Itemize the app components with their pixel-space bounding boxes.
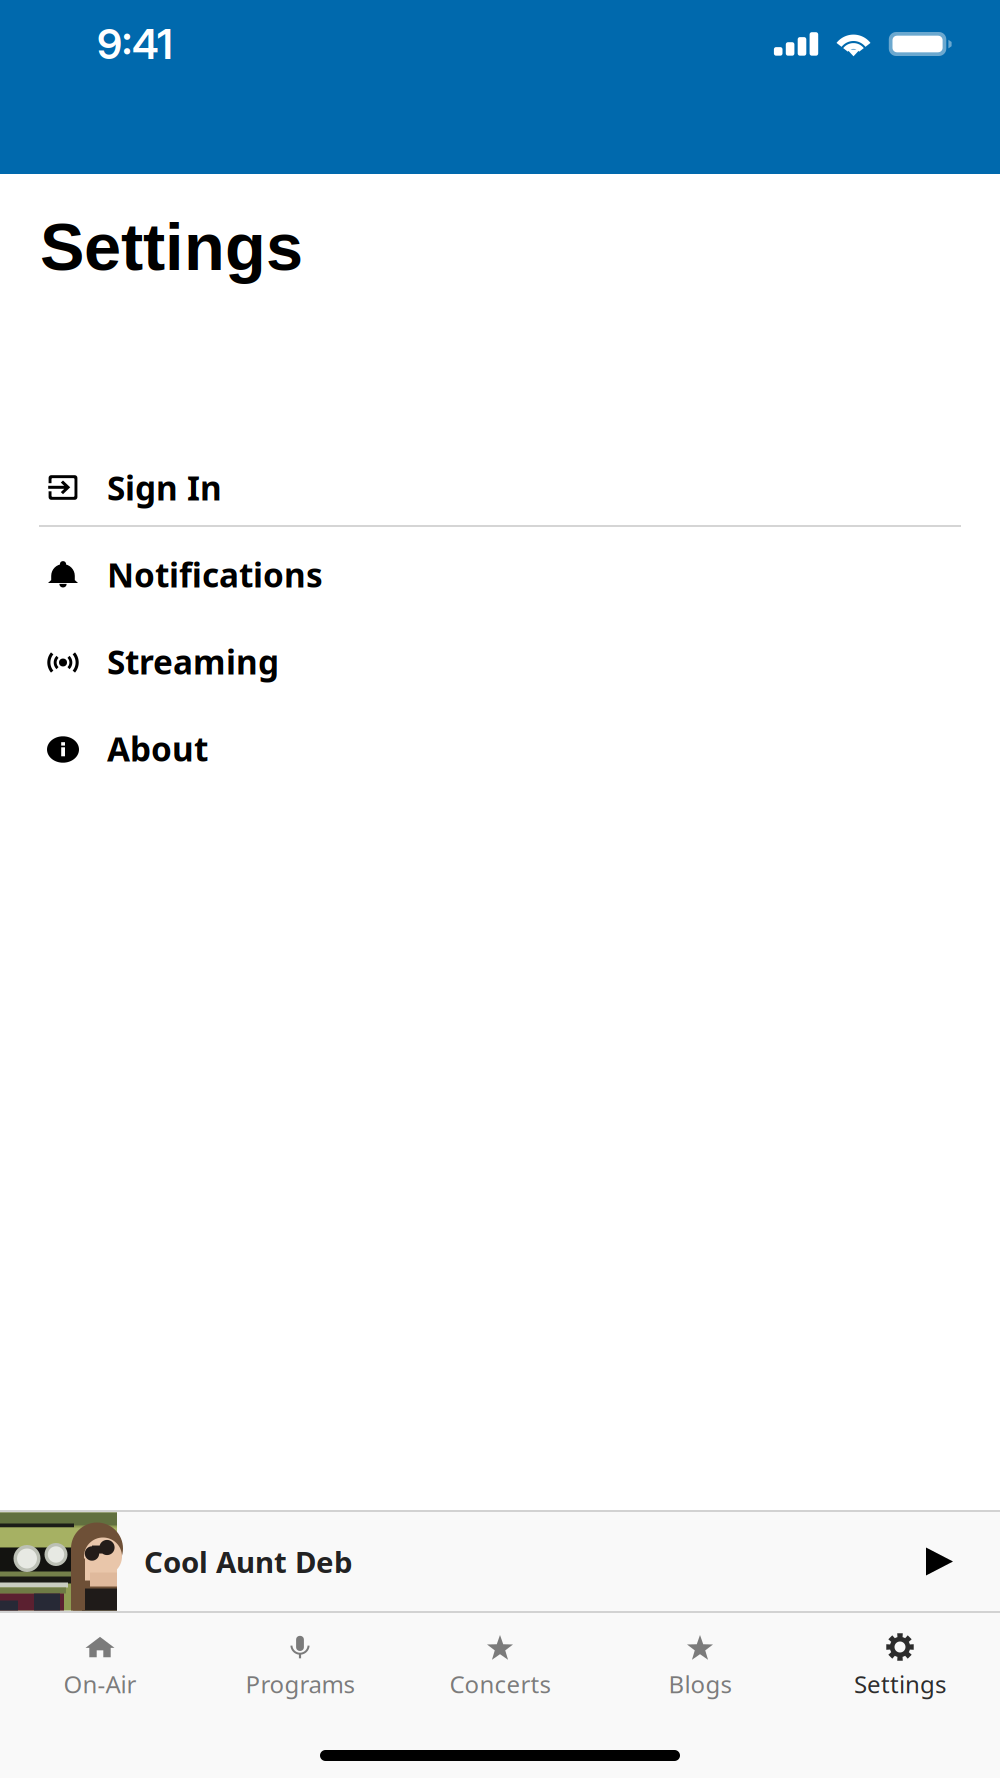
staticText: Notifications: [107, 552, 323, 597]
button[interactable]: Blogs: [600, 1613, 800, 1723]
staticText: About: [107, 726, 208, 771]
staticText: Settings: [40, 210, 303, 284]
button[interactable]: Programs: [200, 1613, 400, 1723]
button[interactable]: On-Air: [0, 1613, 200, 1723]
staticText: Sign In: [107, 465, 222, 510]
button[interactable]: About: [0, 702, 1000, 789]
staticText: On-Air: [63, 1668, 136, 1700]
staticText: Cool Aunt Deb: [144, 1542, 353, 1581]
staticText: 9:41: [97, 19, 173, 69]
staticText: Concerts: [449, 1668, 550, 1700]
button[interactable]: Settings: [800, 1613, 1000, 1723]
button[interactable]: Concerts: [400, 1613, 600, 1723]
button[interactable]: Sign In: [0, 441, 1000, 528]
button[interactable]: Notifications: [0, 528, 1000, 615]
staticText: Streaming: [107, 639, 279, 684]
button[interactable]: Streaming: [0, 615, 1000, 702]
staticText: Blogs: [668, 1668, 731, 1700]
staticText: Programs: [245, 1668, 354, 1700]
button[interactable]: Cool Aunt Deb: [0, 1512, 1000, 1611]
staticText: Settings: [854, 1668, 946, 1700]
